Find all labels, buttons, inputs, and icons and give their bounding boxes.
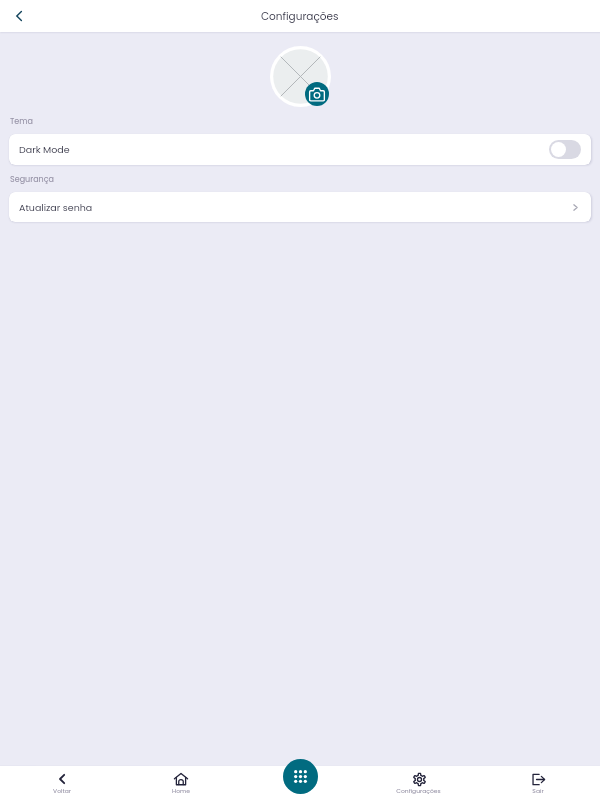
staticText: Tema (10, 116, 33, 127)
staticText: Dark Mode (19, 143, 70, 156)
button[interactable]: Alterar foto (305, 82, 329, 106)
button[interactable]: Sair (478, 766, 597, 800)
button[interactable]: Configurações (359, 766, 478, 800)
staticText: Atualizar senha (19, 201, 93, 214)
staticText: Voltar (53, 787, 71, 795)
button[interactable]: Dark Mode toggle (549, 140, 581, 159)
staticText: Segurança (10, 174, 54, 185)
staticText: Configurações (396, 787, 441, 795)
button[interactable]: Voltar (3, 766, 121, 800)
staticText: Home (172, 787, 190, 795)
button[interactable]: Home (121, 766, 240, 800)
staticText: Sair (532, 787, 544, 795)
button[interactable]: Voltar (7, 4, 31, 28)
button[interactable]: Apps (283, 759, 318, 794)
button[interactable]: Dark Mode (9, 134, 591, 165)
staticText: Configurações (261, 9, 339, 24)
button[interactable]: Atualizar senha (9, 192, 591, 222)
